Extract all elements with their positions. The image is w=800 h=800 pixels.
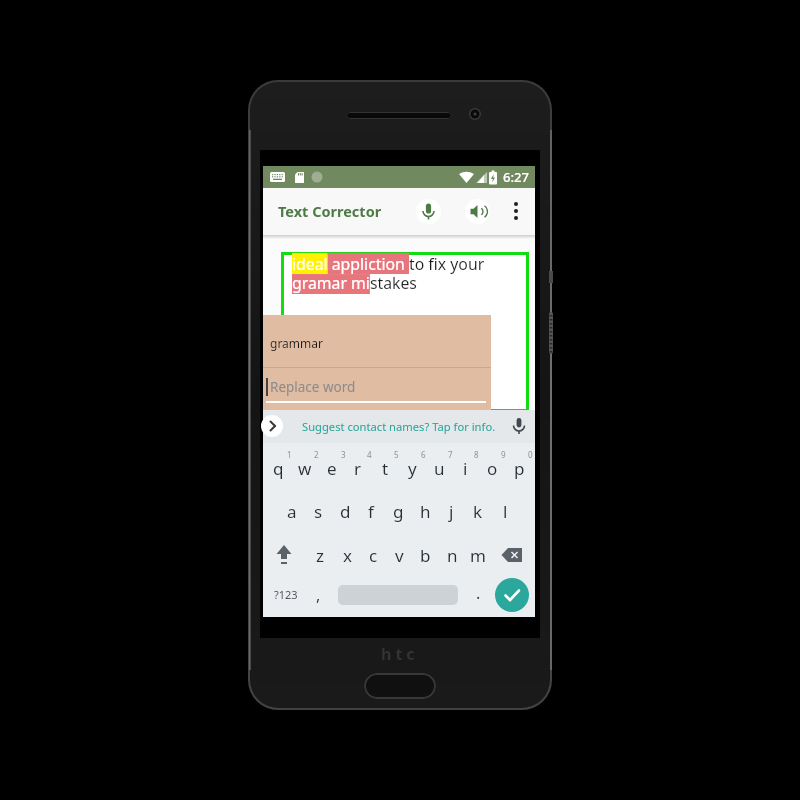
button[interactable]: x (334, 542, 360, 568)
staticText: grammar (270, 335, 323, 351)
button[interactable]: d (332, 498, 358, 524)
staticText: ?123 (274, 587, 298, 602)
staticText: 7 (448, 449, 453, 460)
staticText: h (420, 500, 431, 523)
button[interactable]: n (439, 542, 465, 568)
staticText: b (420, 544, 431, 567)
staticText: , (316, 584, 321, 605)
staticText: p (514, 457, 525, 480)
staticText: 0 (528, 449, 533, 460)
staticText: 1 (287, 449, 292, 460)
button[interactable] (465, 199, 490, 224)
staticText: Replace word (270, 378, 356, 396)
staticText: u (434, 457, 445, 480)
staticText: t (382, 457, 389, 480)
button[interactable]: q (265, 455, 291, 481)
button[interactable] (416, 199, 441, 224)
staticText: f (368, 500, 374, 523)
button[interactable]: m (465, 542, 491, 568)
staticText: n (447, 544, 458, 567)
button[interactable]: f (358, 498, 384, 524)
staticText: ideal appliction to fix your gramar mist… (292, 253, 485, 294)
staticText: 6 (421, 449, 426, 460)
staticText: Text Corrector (278, 201, 382, 221)
staticText: x (343, 544, 352, 567)
button[interactable]: Text Corrector (278, 196, 388, 226)
button[interactable] (364, 673, 436, 699)
staticText: k (473, 500, 483, 523)
staticText: r (354, 457, 362, 480)
staticText: o (487, 457, 498, 480)
staticText: 2 (314, 449, 319, 460)
button[interactable]: , (308, 584, 328, 605)
button[interactable]: r (345, 455, 371, 481)
staticText: w (298, 457, 312, 480)
button[interactable]: b (412, 542, 438, 568)
staticText: a (287, 500, 297, 523)
button[interactable]: o (479, 455, 505, 481)
staticText: l (503, 500, 508, 523)
button[interactable]: j (438, 498, 464, 524)
button[interactable]: p (506, 455, 532, 481)
button[interactable] (261, 415, 283, 437)
button[interactable]: u (426, 455, 452, 481)
button[interactable] (495, 578, 529, 612)
button[interactable]: t (372, 455, 398, 481)
button[interactable]: z (307, 542, 333, 568)
staticText: . (476, 582, 481, 603)
button[interactable]: l (492, 498, 518, 524)
button[interactable]: w (292, 455, 318, 481)
button[interactable] (499, 542, 526, 568)
staticText: e (327, 457, 337, 480)
staticText: i (463, 457, 468, 480)
button[interactable]: k (465, 498, 491, 524)
button[interactable]: i (452, 455, 478, 481)
staticText: 9 (501, 449, 506, 460)
button[interactable]: s (305, 498, 331, 524)
button[interactable] (271, 542, 297, 568)
staticText: j (449, 500, 454, 523)
button[interactable]: e (319, 455, 345, 481)
staticText: s (314, 500, 323, 523)
staticText: c (369, 544, 378, 567)
staticText: Suggest contact names? Tap for info. (302, 419, 496, 434)
staticText: 4 (367, 449, 372, 460)
button[interactable] (263, 410, 535, 444)
staticText: z (316, 544, 324, 567)
button[interactable]: y (399, 455, 425, 481)
button[interactable]: c (360, 542, 386, 568)
staticText: y (408, 457, 417, 480)
button[interactable]: ?123 (272, 584, 300, 605)
staticText: q (273, 457, 284, 480)
button[interactable]: a (279, 498, 305, 524)
staticText: 5 (394, 449, 399, 460)
staticText: 6:27 (503, 168, 529, 186)
button[interactable]: v (386, 542, 412, 568)
staticText: d (340, 500, 351, 523)
staticText: v (395, 544, 404, 567)
button[interactable]: h (412, 498, 438, 524)
button[interactable]: g (385, 498, 411, 524)
staticText: 8 (474, 449, 479, 460)
button[interactable]: . (468, 582, 488, 603)
staticText: 3 (341, 449, 346, 460)
button[interactable] (508, 196, 524, 226)
staticText: m (470, 544, 486, 567)
staticText: htc (381, 643, 419, 665)
staticText: g (393, 500, 404, 523)
